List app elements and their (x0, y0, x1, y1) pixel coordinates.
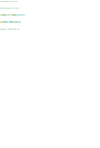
staticText: Sample description: (0, 27, 20, 30)
staticText: Sample description: (0, 6, 19, 9)
staticText: Sample description: (0, 21, 21, 23)
staticText: Sample description: (0, 13, 26, 17)
staticText: Sample description: (0, 0, 18, 2)
